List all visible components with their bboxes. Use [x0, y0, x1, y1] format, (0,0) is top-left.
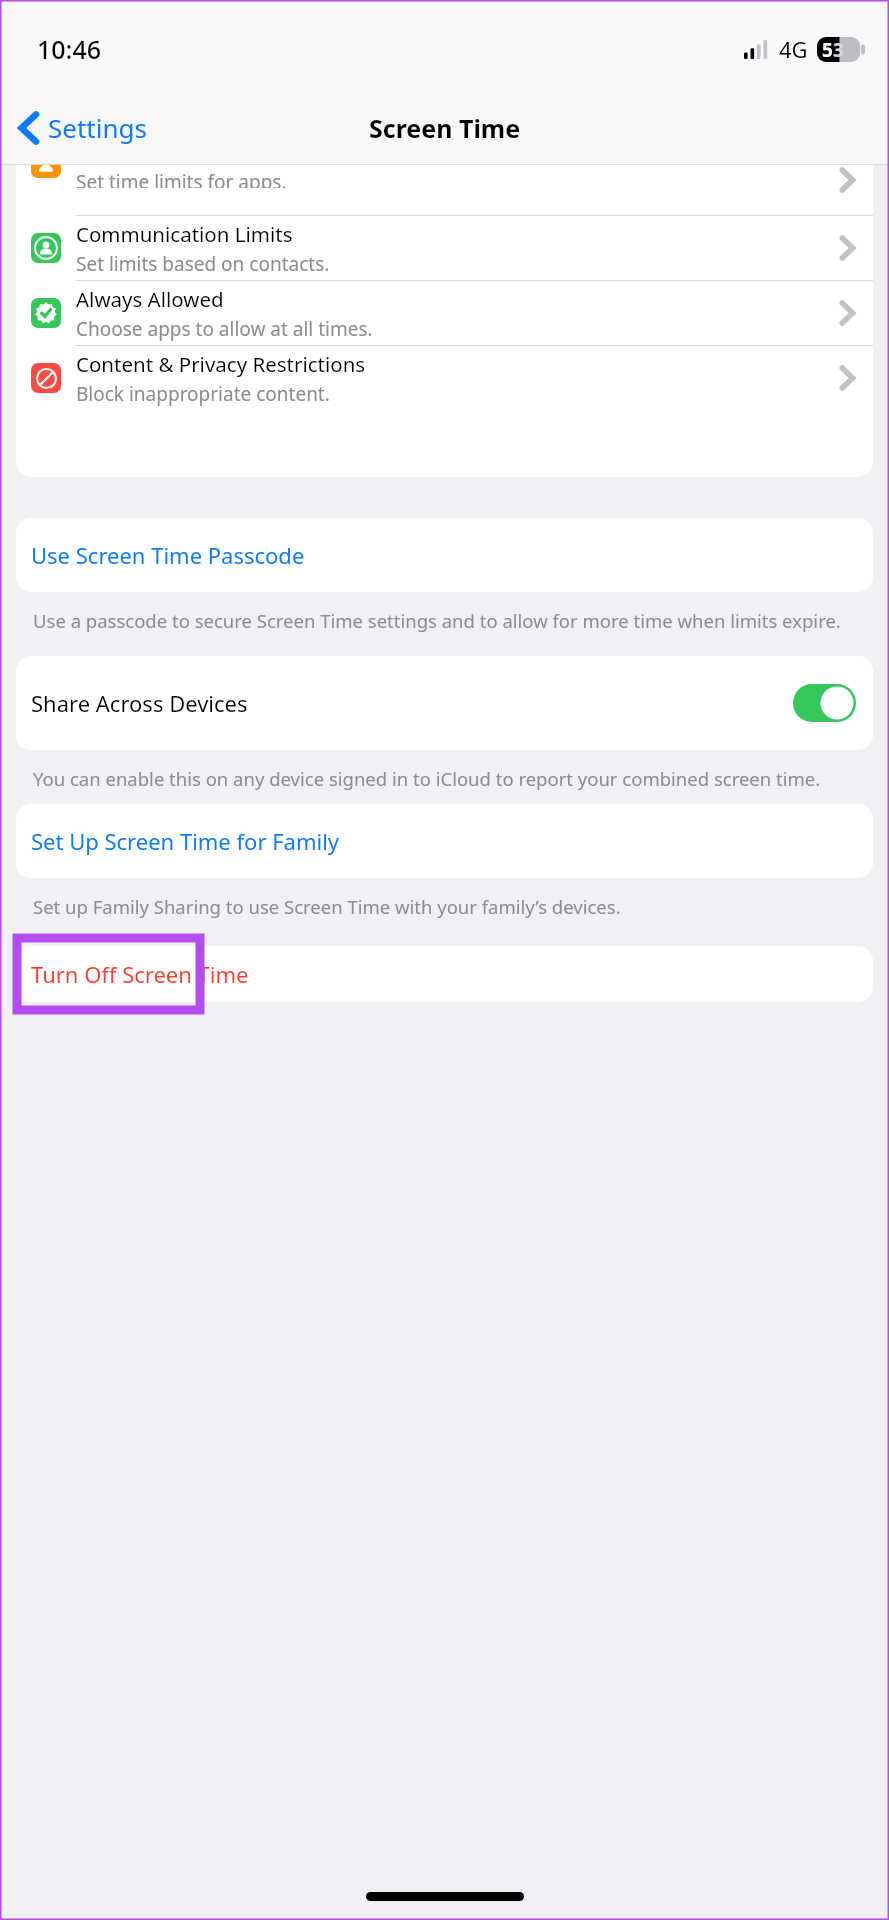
staticText: Screen Time: [369, 111, 521, 145]
staticText: Choose apps to allow at all times.: [76, 316, 373, 342]
staticText: 10:46: [37, 32, 102, 66]
staticText: Communication Limits: [76, 220, 293, 248]
staticText: Set time limits for apps.: [76, 169, 287, 188]
staticText: Settings: [48, 110, 147, 145]
staticText: 3: [833, 37, 844, 62]
button[interactable]: Content & Privacy Restrictions: [16, 346, 873, 410]
staticText: Set Up Screen Time for Family: [31, 826, 340, 856]
button[interactable]: Share Across Devices: [16, 656, 873, 750]
staticText: Content & Privacy Restrictions: [76, 350, 366, 378]
staticText: 5: [822, 37, 833, 62]
staticText: Turn Off Screen Time: [31, 959, 249, 989]
staticText: Set up Family Sharing to use Screen Time…: [33, 894, 621, 919]
button[interactable]: Turn Off Screen Time: [16, 946, 873, 1002]
staticText: Share Across Devices: [31, 688, 248, 718]
staticText: You can enable this on any device signed…: [33, 766, 821, 791]
staticText: Block inappropriate content.: [76, 381, 330, 407]
button[interactable]: Set Up Screen Time for Family: [16, 804, 873, 878]
staticText: Use a passcode to secure Screen Time set…: [33, 608, 841, 633]
staticText: Set limits based on contacts.: [76, 251, 330, 277]
button[interactable]: App Limits: [16, 165, 873, 215]
button[interactable]: Use Screen Time Passcode: [16, 518, 873, 592]
staticText: Use Screen Time Passcode: [31, 540, 305, 570]
staticText: Always Allowed: [76, 285, 224, 313]
button[interactable]: Share Across Devices toggle, on: [793, 684, 856, 722]
staticText: 4G: [779, 34, 808, 64]
button[interactable]: Communication Limits: [16, 216, 873, 280]
button[interactable]: Settings: [18, 110, 147, 145]
button[interactable]: Always Allowed: [16, 281, 873, 345]
